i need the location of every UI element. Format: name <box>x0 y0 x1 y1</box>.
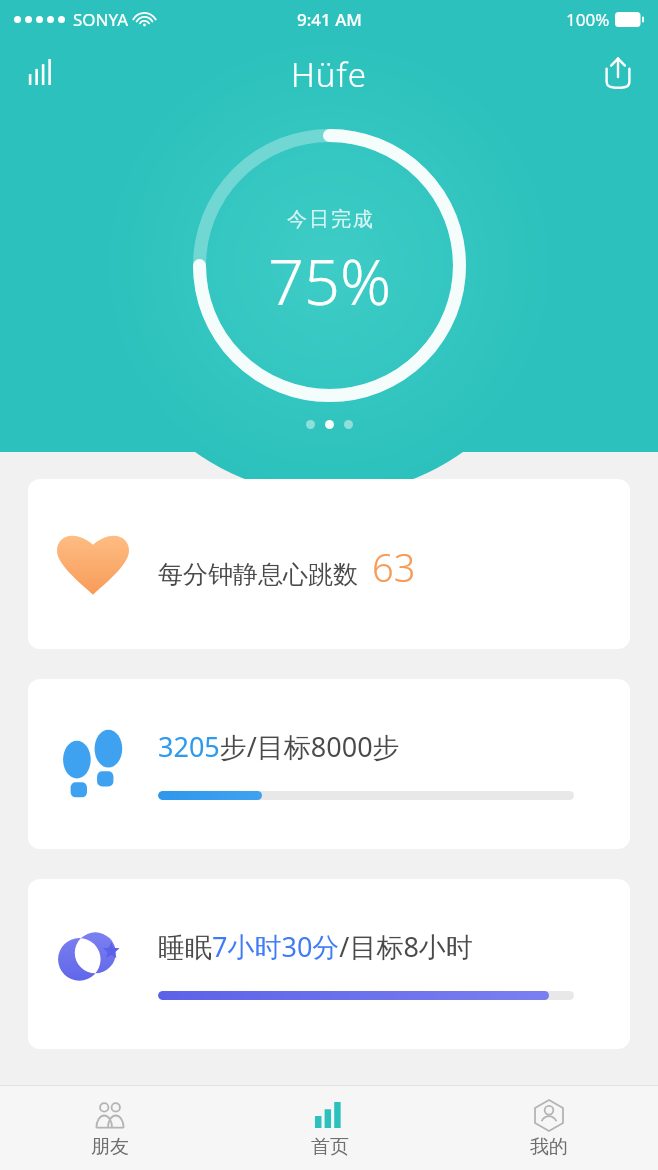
staticText: Hüfe <box>291 52 367 97</box>
staticText: 睡眠7小时30分/目标8小时 <box>158 928 473 965</box>
staticText: 我的 <box>530 1135 568 1159</box>
staticText: SONYA <box>73 8 128 31</box>
staticText: 3205步/目标8000步 <box>158 728 400 765</box>
button[interactable]: 每分钟静息心跳数 <box>28 479 630 649</box>
staticText: 每分钟静息心跳数 <box>158 559 358 590</box>
button[interactable]: 首页 <box>220 1086 439 1170</box>
staticText: 100% <box>566 8 610 31</box>
staticText: 朋友 <box>91 1135 129 1159</box>
button[interactable]: 睡眠7小时30分/目标8小时 <box>28 879 630 1049</box>
staticText: 今日完成 <box>286 207 374 232</box>
button[interactable]: 朋友 <box>0 1086 220 1170</box>
button[interactable]: 3205步/目标8000步 <box>28 679 630 849</box>
button[interactable]: Statistics <box>18 50 62 94</box>
button[interactable]: Share <box>594 48 642 96</box>
staticText: 9:41 AM <box>297 8 362 31</box>
button[interactable]: 我的 <box>439 1086 658 1170</box>
staticText: 63 <box>372 541 416 593</box>
staticText: 75% <box>268 238 392 324</box>
staticText: 首页 <box>311 1135 349 1159</box>
